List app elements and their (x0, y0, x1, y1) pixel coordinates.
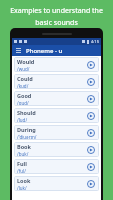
staticText: Look (17, 177, 31, 184)
button[interactable]: Good (14, 91, 99, 106)
staticText: Would (17, 58, 35, 65)
staticText: Good (17, 92, 32, 99)
button[interactable]: Play During (85, 127, 96, 138)
button[interactable]: Play Full (85, 161, 96, 172)
staticText: /ˈdjuərɪŋ/ (17, 134, 37, 140)
button[interactable]: Full (14, 159, 99, 174)
button[interactable]: Open navigation menu (15, 47, 22, 54)
staticText: /gud/ (17, 100, 29, 106)
button[interactable]: Would (14, 57, 99, 72)
staticText: Could (17, 75, 33, 82)
staticText: /kud/ (17, 83, 29, 89)
button[interactable]: Play Could (85, 76, 96, 87)
staticText: /wud/ (17, 66, 30, 72)
staticText: Full (17, 160, 27, 167)
button[interactable]: Book (14, 142, 99, 157)
button[interactable]: Play Look (85, 178, 96, 189)
staticText: Should (17, 109, 36, 116)
button[interactable]: Play Should (85, 110, 96, 121)
staticText: 4:15 (91, 39, 99, 44)
button[interactable]: Could (14, 74, 99, 89)
staticText: /buk/ (17, 151, 29, 157)
staticText: During (17, 126, 36, 133)
staticText: Phoneme - u (26, 47, 63, 55)
button[interactable]: Play Good (85, 93, 96, 104)
staticText: Book (17, 143, 31, 150)
staticText: Examples to understand the (10, 6, 103, 16)
button[interactable]: Play Would (85, 59, 96, 70)
staticText: basic sounds (35, 18, 78, 28)
button[interactable]: Play Book (85, 144, 96, 155)
button[interactable]: Should (14, 108, 99, 123)
button[interactable]: Look (14, 176, 99, 191)
button[interactable]: During (14, 125, 99, 140)
staticText: /ʃud/ (17, 117, 28, 123)
staticText: /ful/ (17, 168, 26, 174)
staticText: /luk/ (17, 185, 27, 191)
